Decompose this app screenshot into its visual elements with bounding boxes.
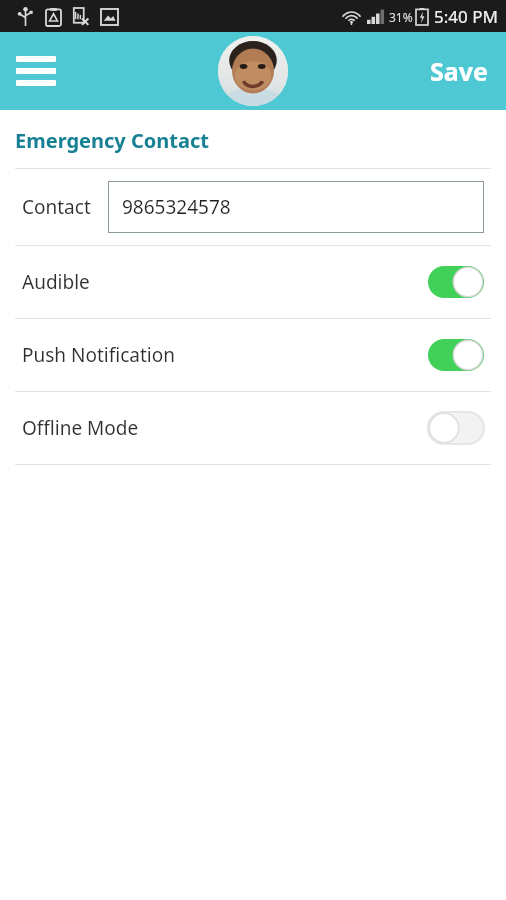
staticText: 5:40 PM: [434, 5, 498, 28]
staticText: Offline Mode: [22, 415, 428, 441]
staticText: 31%: [389, 9, 413, 25]
button[interactable]: Push Notification: [0, 319, 506, 391]
button[interactable]: Open navigation menu: [8, 43, 64, 99]
button[interactable]: On: [428, 266, 484, 298]
staticText: Audible: [22, 269, 428, 295]
button[interactable]: Offline Mode: [0, 392, 506, 464]
staticText: 9865324578: [122, 194, 231, 220]
button[interactable]: On: [428, 339, 484, 371]
staticText: Contact: [22, 194, 91, 220]
button[interactable]: Profile photo: [218, 36, 288, 106]
staticText: Push Notification: [22, 342, 428, 368]
button[interactable]: Audible: [0, 246, 506, 318]
button[interactable]: Contact: [0, 169, 506, 245]
button[interactable]: Save: [412, 40, 506, 102]
staticText: Save: [430, 54, 488, 88]
staticText: Emergency Contact: [15, 127, 209, 154]
button[interactable]: Off: [428, 412, 484, 444]
